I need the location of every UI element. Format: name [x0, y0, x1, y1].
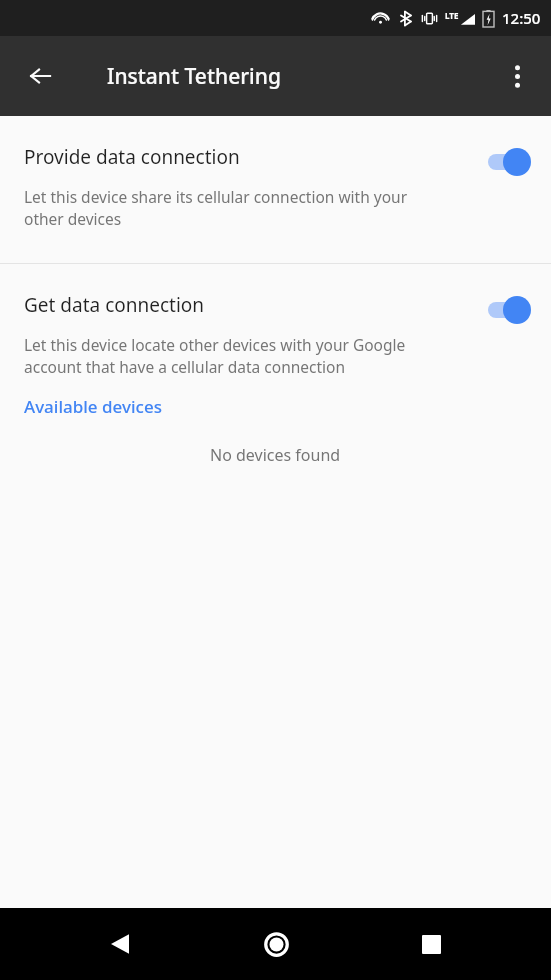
staticText: Get data connection [24, 292, 205, 318]
staticText: Provide data connection [24, 144, 240, 170]
staticText: LTE [445, 10, 459, 21]
button[interactable]: Home [252, 920, 300, 968]
staticText: Instant Tethering [107, 62, 281, 91]
button[interactable]: Provide data connection [0, 116, 551, 263]
staticText: No devices found [210, 444, 341, 466]
button[interactable]: More options [493, 52, 541, 100]
staticText: Let this device share its cellular conne… [24, 186, 408, 207]
button[interactable]: Available devices [0, 385, 551, 426]
staticText: other devices [24, 208, 122, 229]
button[interactable]: Recent apps [407, 920, 455, 968]
staticText: 12:50 [502, 8, 541, 28]
staticText: account that have a cellular data connec… [24, 356, 346, 377]
staticText: Available devices [24, 395, 162, 418]
button[interactable]: Provide data connection toggle [487, 147, 531, 177]
button[interactable]: Get data connection [0, 264, 551, 385]
staticText: Let this device locate other devices wit… [24, 334, 406, 355]
button[interactable]: Back [96, 920, 144, 968]
button[interactable]: Navigate up [17, 52, 65, 100]
button[interactable]: Get data connection toggle [487, 295, 531, 325]
